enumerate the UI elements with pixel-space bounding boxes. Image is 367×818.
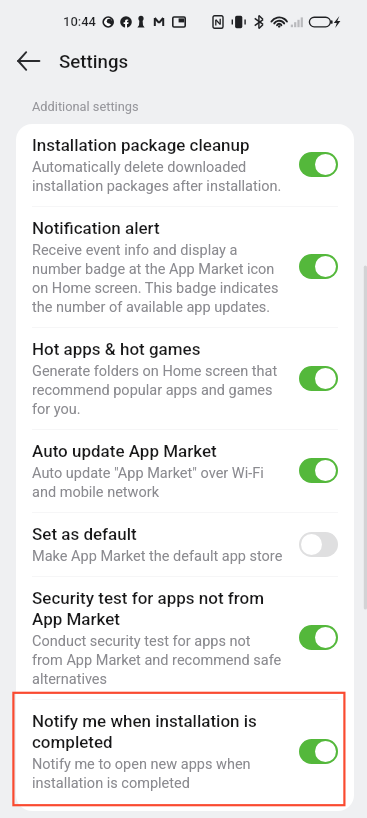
staticText: Automatically delete downloaded installa… bbox=[32, 157, 282, 195]
staticText: Auto update App Market bbox=[32, 440, 217, 461]
button[interactable]: Switch on bbox=[299, 254, 338, 279]
staticText: Notify me when installation is completed bbox=[32, 710, 257, 752]
staticText: Installation package cleanup bbox=[32, 134, 250, 155]
staticText: Make App Market the default app store bbox=[32, 546, 283, 565]
staticText: Settings bbox=[59, 51, 129, 73]
button[interactable]: Switch on bbox=[299, 739, 338, 764]
button[interactable]: Installation package cleanup bbox=[16, 124, 354, 206]
button[interactable]: Notify me when installation is completed bbox=[16, 700, 354, 803]
button[interactable]: Switch off bbox=[299, 532, 338, 557]
button[interactable]: Switch on bbox=[299, 152, 338, 177]
button[interactable]: Switch on bbox=[299, 625, 338, 650]
button[interactable]: Security test for apps not from App Mark… bbox=[16, 577, 354, 699]
staticText: Security test for apps not from App Mark… bbox=[32, 587, 265, 629]
staticText: Notification alert bbox=[32, 217, 160, 238]
button[interactable]: Notification alert bbox=[16, 207, 354, 327]
staticText: Set as default bbox=[32, 523, 137, 544]
staticText: Hot apps & hot games bbox=[32, 338, 201, 359]
button[interactable]: Set as default bbox=[16, 513, 354, 576]
staticText: Auto update "App Market" over Wi-Fi and … bbox=[32, 463, 264, 501]
staticText: Additional settings bbox=[32, 99, 139, 114]
button[interactable]: Auto update App Market bbox=[16, 430, 354, 512]
staticText: 10:44 bbox=[63, 14, 96, 29]
staticText: Generate folders on Home screen that rec… bbox=[32, 361, 278, 418]
button[interactable]: Back bbox=[6, 38, 51, 83]
button[interactable]: Switch on bbox=[299, 366, 338, 391]
staticText: Notify me to open new apps when installa… bbox=[32, 754, 251, 792]
staticText: Receive event info and display a number … bbox=[32, 240, 279, 316]
button[interactable]: Switch on bbox=[299, 458, 338, 483]
staticText: Conduct security test for apps not from … bbox=[32, 631, 282, 688]
button[interactable]: Hot apps & hot games bbox=[16, 328, 354, 429]
